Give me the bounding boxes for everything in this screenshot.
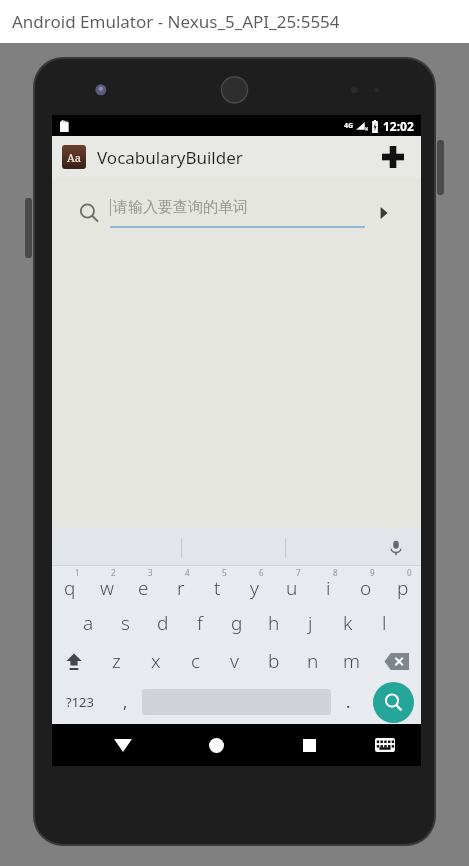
button[interactable]: Home [194,724,238,766]
staticText: i [326,575,331,601]
button[interactable]: k [329,604,366,642]
staticText: m [343,648,360,674]
staticText: j [308,610,313,636]
staticText: a [83,610,94,636]
button[interactable]: f [181,604,218,642]
staticText: u [286,575,298,601]
staticText: b [268,648,280,674]
button[interactable]: 7 [273,566,310,604]
staticText: d [157,610,169,636]
button[interactable]: Backspace [371,642,421,680]
button[interactable]: Add word [375,139,411,175]
staticText: 9 [370,567,375,578]
staticText: g [231,610,243,636]
staticText: v [230,648,239,674]
button[interactable]: x [136,642,176,680]
staticText: , [123,691,128,713]
button[interactable]: 3 [125,566,162,604]
button[interactable]: 4 [162,566,199,604]
button[interactable]: c [176,642,215,680]
staticText: Android Emulator - Nexus_5_API_25:5554 [12,10,340,33]
button[interactable]: . [331,680,365,724]
button[interactable]: 9 [347,566,384,604]
button[interactable]: j [292,604,329,642]
button[interactable]: Shift [52,642,96,680]
button[interactable]: n [293,642,332,680]
button[interactable]: Back [101,724,145,766]
staticText: q [64,575,76,601]
button[interactable]: b [254,642,293,680]
button[interactable]: Recent apps [287,724,331,766]
button[interactable]: z [96,642,136,680]
staticText: s [121,610,130,636]
button[interactable]: d [144,604,181,642]
button[interactable]: 2 [88,566,125,604]
button[interactable]: Voice input [383,535,409,561]
staticText: 4G [344,121,354,131]
button[interactable]: 请输入要查询的单词 [79,198,397,228]
staticText: 12:02 [383,118,414,134]
button[interactable]: ?123 [52,680,108,724]
staticText: 2 [111,567,116,578]
staticText: o [360,575,372,601]
staticText: h [268,610,280,636]
staticText: . [346,691,351,713]
staticText: 5 [222,567,227,578]
staticText: 1 [75,567,80,578]
staticText: 6 [259,567,264,578]
button[interactable]: Search [371,200,397,226]
staticText: f [197,610,203,636]
staticText: ?123 [66,693,94,711]
button[interactable]: Switch keyboard [365,725,405,765]
staticText: x [151,648,161,674]
button[interactable]: 6 [236,566,273,604]
staticText: y [250,575,259,601]
button[interactable]: , [108,680,142,724]
button[interactable]: g [218,604,255,642]
staticText: r [177,575,185,601]
button[interactable]: s [107,604,144,642]
button[interactable]: a [70,604,107,642]
staticText: 请输入要查询的单词 [113,198,248,217]
staticText: 8 [333,567,338,578]
staticText: e [138,575,149,601]
button[interactable]: h [255,604,292,642]
button[interactable]: 8 [310,566,347,604]
staticText: 4 [185,567,190,578]
staticText: 0 [407,567,412,578]
staticText: l [382,610,387,636]
button[interactable]: Search [365,680,421,724]
staticText: 7 [296,567,301,578]
staticText: w [100,575,114,601]
staticText: n [307,648,319,674]
staticText: 3 [148,567,153,578]
button[interactable]: v [215,642,254,680]
button[interactable]: 1 [52,566,88,604]
staticText: p [397,575,409,601]
staticText: VocabularyBuilder [97,146,243,169]
staticText: c [191,648,201,674]
staticText: z [112,648,121,674]
button[interactable]: m [332,642,371,680]
staticText: t [214,575,221,601]
staticText: Aa [67,150,81,165]
button[interactable]: 5 [199,566,236,604]
button[interactable]: l [366,604,403,642]
button[interactable]: 0 [384,566,421,604]
staticText: k [343,610,353,636]
